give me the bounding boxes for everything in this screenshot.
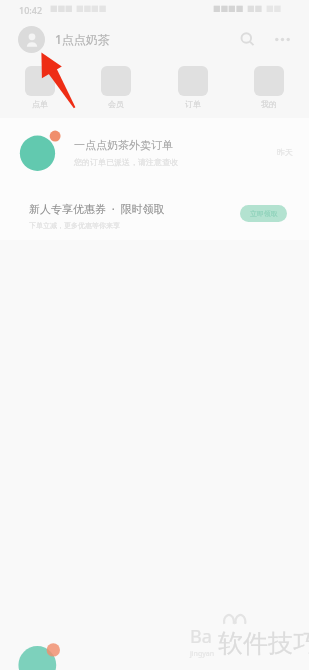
staticText: 一点点奶茶外卖订单 — [74, 138, 173, 152]
button[interactable]: 立即领取 — [240, 205, 287, 222]
staticText: ■■■■ — [76, 4, 107, 13]
staticText: 会员 — [108, 99, 124, 109]
staticText: 您的订单已派送，请注意查收 — [74, 157, 178, 167]
button[interactable]: 我的 — [243, 66, 295, 109]
staticText: jingyan — [190, 649, 215, 659]
staticText: Ba — [190, 624, 212, 649]
button[interactable]: Profile avatar — [18, 26, 45, 53]
staticText: ■■ — [247, 4, 263, 13]
staticText: ■■■ — [50, 4, 73, 13]
staticText: 下单立减，更多优惠等你来享 — [29, 221, 120, 230]
staticText: 点单 — [32, 99, 48, 109]
staticText: ■■■■ — [213, 4, 244, 13]
button[interactable]: 会员 — [90, 66, 142, 109]
button[interactable]: Search — [236, 28, 258, 50]
staticText: 1点点奶茶 — [55, 31, 110, 47]
button[interactable]: 新人专享优惠券 · 限时领取 — [0, 186, 309, 240]
staticText: 10:42 — [19, 4, 43, 16]
staticText: 软件技巧 — [218, 628, 309, 659]
button[interactable]: 订单 — [167, 66, 219, 109]
staticText: ■■ — [266, 4, 282, 13]
button[interactable]: More options — [271, 28, 293, 50]
button[interactable]: 点单 — [14, 66, 66, 109]
staticText: 订单 — [185, 99, 201, 109]
staticText: 立即领取 — [250, 209, 278, 218]
staticText: 昨天 — [277, 147, 293, 157]
staticText: 新人专享优惠券 · 限时领取 — [29, 201, 165, 216]
button[interactable]: 一点点奶茶外卖订单 — [0, 118, 309, 186]
staticText: 我的 — [261, 99, 277, 109]
